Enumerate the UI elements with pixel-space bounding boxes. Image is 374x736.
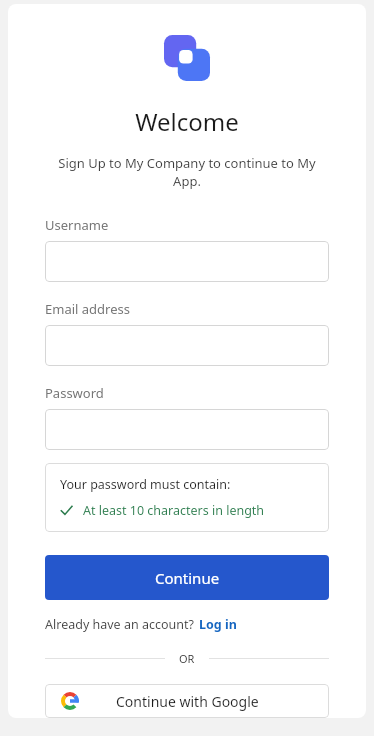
button[interactable]: Log in (199, 616, 237, 633)
staticText: Password (45, 384, 104, 402)
staticText: Already have an account? (45, 616, 194, 633)
staticText: Your password must contain: (60, 476, 231, 493)
staticText: Continue (155, 568, 220, 588)
other: Google (61, 692, 79, 710)
button[interactable]: Password (45, 409, 329, 450)
staticText: OR (179, 651, 195, 666)
staticText: Sign Up to My Company to continue to My … (45, 154, 329, 190)
staticText: Email address (45, 300, 130, 318)
staticText: Continue with Google (116, 692, 259, 711)
button[interactable]: Continue (45, 555, 329, 600)
staticText: Log in (199, 616, 237, 633)
staticText: Welcome (45, 105, 329, 138)
button[interactable]: Username (45, 241, 329, 282)
button[interactable]: Google (45, 684, 329, 718)
staticText: Username (45, 216, 109, 234)
button[interactable]: Email address (45, 325, 329, 366)
staticText: At least 10 characters in length (83, 502, 265, 519)
